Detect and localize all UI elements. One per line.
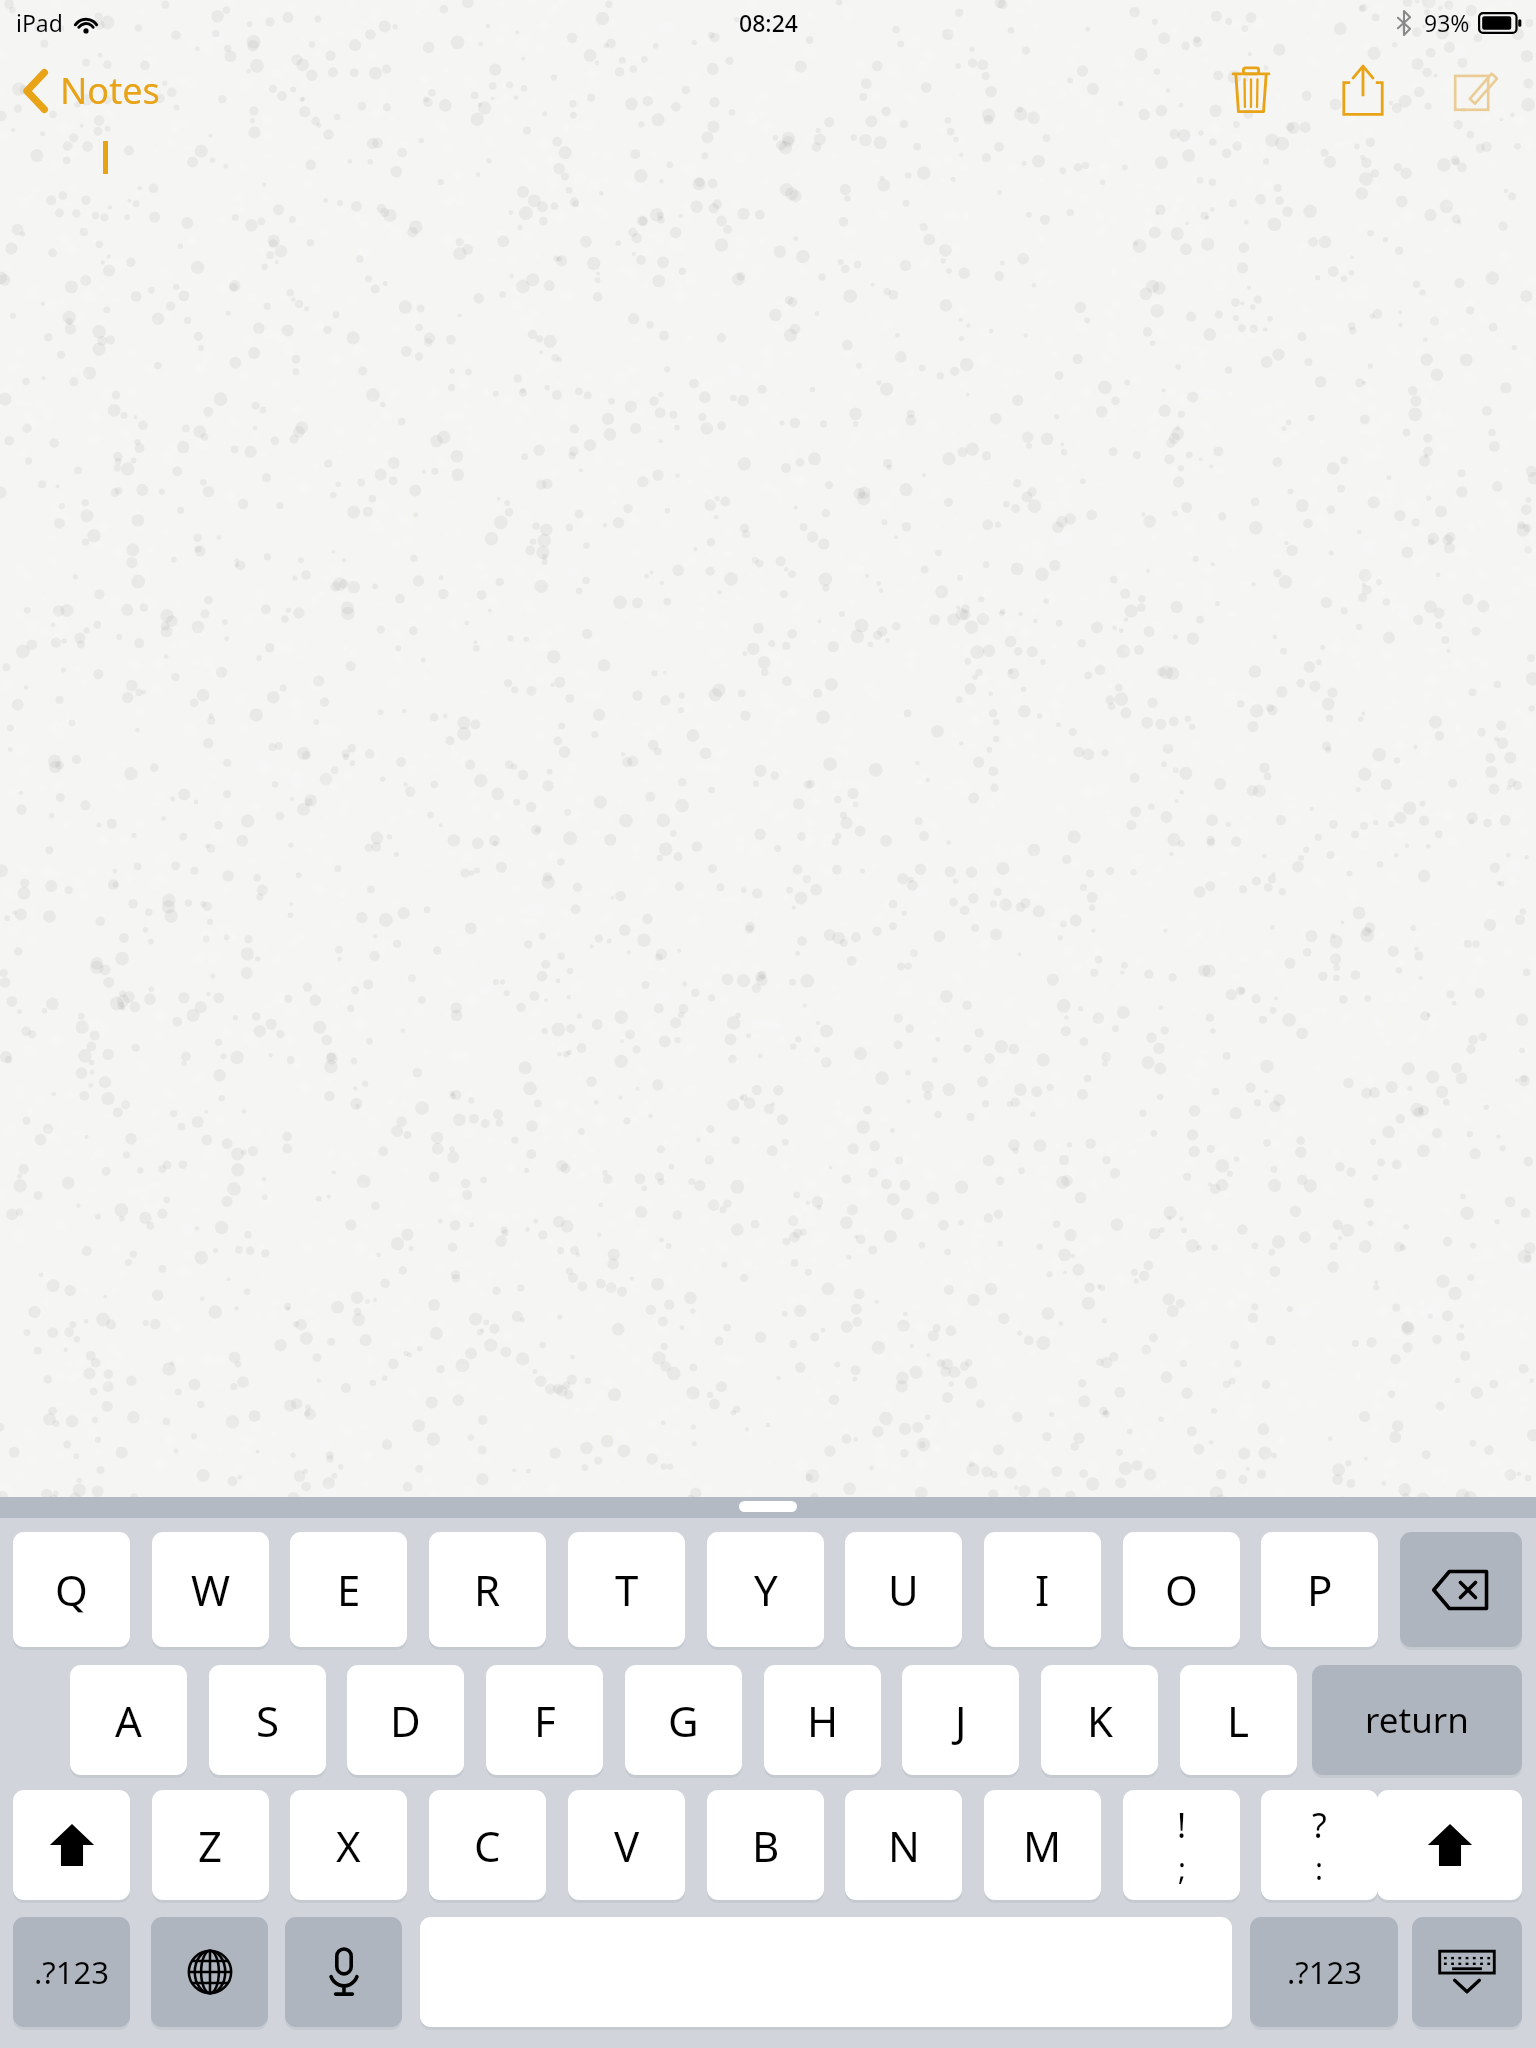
- staticText: T: [615, 1561, 639, 1618]
- staticText: I: [1035, 1561, 1050, 1618]
- button[interactable]: X: [290, 1790, 407, 1900]
- staticText: 08:24: [739, 7, 798, 38]
- button[interactable]: Dictation: [285, 1917, 402, 2027]
- staticText: Y: [754, 1561, 778, 1618]
- staticText: !: [1177, 1802, 1187, 1848]
- button[interactable]: B: [707, 1790, 824, 1900]
- button[interactable]: E: [290, 1532, 407, 1647]
- staticText: B: [752, 1817, 780, 1874]
- button[interactable]: P: [1261, 1532, 1378, 1647]
- button[interactable]: Hide keyboard: [1412, 1917, 1522, 2027]
- button[interactable]: M: [984, 1790, 1101, 1900]
- button[interactable]: O: [1123, 1532, 1240, 1647]
- staticText: O: [1165, 1561, 1198, 1618]
- button[interactable]: V: [568, 1790, 685, 1900]
- staticText: J: [955, 1692, 967, 1749]
- staticText: return: [1365, 1696, 1469, 1744]
- button[interactable]: L: [1180, 1665, 1297, 1775]
- button[interactable]: Shift: [1377, 1790, 1522, 1900]
- staticText: iPad: [16, 7, 63, 38]
- button[interactable]: S: [209, 1665, 326, 1775]
- staticText: P: [1307, 1561, 1333, 1618]
- button[interactable]: H: [764, 1665, 881, 1775]
- staticText: D: [390, 1692, 421, 1749]
- staticText: L: [1227, 1692, 1250, 1749]
- button[interactable]: .?123: [1250, 1917, 1398, 2027]
- staticText: U: [888, 1561, 919, 1618]
- button[interactable]: D: [347, 1665, 464, 1775]
- staticText: M: [1023, 1817, 1062, 1874]
- button[interactable]: G: [625, 1665, 742, 1775]
- staticText: X: [336, 1817, 361, 1874]
- staticText: :: [1315, 1848, 1324, 1889]
- staticText: H: [807, 1692, 839, 1749]
- staticText: S: [256, 1692, 280, 1749]
- button[interactable]: K: [1041, 1665, 1158, 1775]
- staticText: ;: [1178, 1848, 1187, 1889]
- staticText: 93%: [1424, 7, 1470, 38]
- staticText: .?123: [34, 1951, 109, 1993]
- staticText: C: [474, 1817, 501, 1874]
- staticText: K: [1087, 1692, 1113, 1749]
- staticText: .?123: [1287, 1951, 1362, 1993]
- button[interactable]: !: [1123, 1790, 1240, 1900]
- button[interactable]: New note: [1434, 49, 1516, 131]
- button[interactable]: N: [845, 1790, 962, 1900]
- button[interactable]: J: [902, 1665, 1019, 1775]
- staticText: E: [337, 1561, 361, 1618]
- staticText: V: [614, 1817, 640, 1874]
- button[interactable]: Backspace: [1400, 1532, 1522, 1647]
- button[interactable]: Z: [152, 1790, 269, 1900]
- button[interactable]: Change keyboard: [151, 1917, 268, 2027]
- button[interactable]: [739, 1501, 797, 1512]
- button[interactable]: Q: [13, 1532, 130, 1647]
- button[interactable]: return: [1312, 1665, 1522, 1775]
- button[interactable]: T: [568, 1532, 685, 1647]
- staticText: Notes: [60, 66, 160, 115]
- staticText: W: [191, 1561, 231, 1618]
- button[interactable]: .?123: [13, 1917, 130, 2027]
- button[interactable]: F: [486, 1665, 603, 1775]
- staticText: R: [474, 1561, 501, 1618]
- button[interactable]: I: [984, 1532, 1101, 1647]
- button[interactable]: Y: [707, 1532, 824, 1647]
- button[interactable]: W: [152, 1532, 269, 1647]
- button[interactable]: Share: [1322, 49, 1404, 131]
- button[interactable]: Shift: [13, 1790, 130, 1900]
- staticText: Z: [198, 1817, 223, 1874]
- staticText: A: [115, 1692, 142, 1749]
- button[interactable]: R: [429, 1532, 546, 1647]
- button[interactable]: Notes: [16, 58, 168, 123]
- staticText: G: [668, 1692, 699, 1749]
- staticText: F: [534, 1692, 556, 1749]
- button[interactable]: ?: [1261, 1790, 1378, 1900]
- staticText: Q: [55, 1561, 88, 1618]
- button[interactable]: U: [845, 1532, 962, 1647]
- staticText: N: [888, 1817, 920, 1874]
- staticText: ?: [1312, 1802, 1327, 1848]
- button[interactable]: C: [429, 1790, 546, 1900]
- button[interactable]: A: [70, 1665, 187, 1775]
- button[interactable]: Delete: [1210, 49, 1292, 131]
